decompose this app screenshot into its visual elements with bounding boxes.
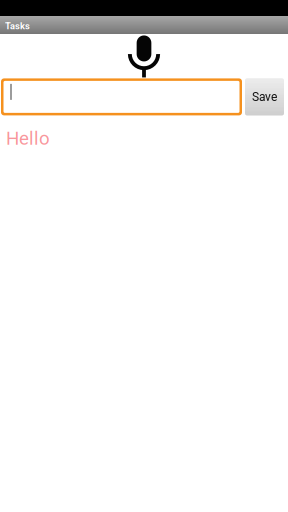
button[interactable]: Save xyxy=(245,78,284,115)
staticText: Save xyxy=(252,90,277,104)
staticText: Hello xyxy=(6,127,50,149)
button[interactable]: Task text field xyxy=(1,78,242,115)
staticText: Tasks xyxy=(5,21,30,32)
